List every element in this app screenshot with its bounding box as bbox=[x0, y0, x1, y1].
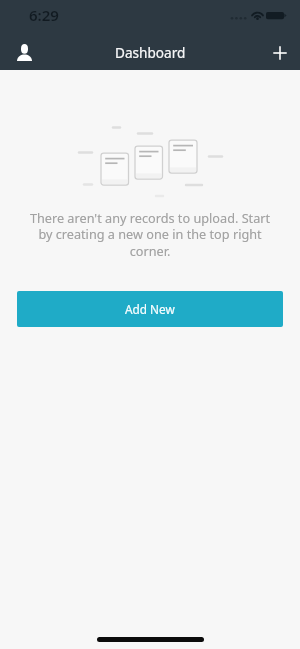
staticText: Dashboard bbox=[115, 43, 186, 62]
button[interactable]: Add New bbox=[17, 291, 283, 327]
staticText: 6:29 bbox=[29, 5, 59, 25]
button[interactable]: Profile bbox=[0, 30, 48, 70]
button[interactable]: Add bbox=[260, 30, 300, 70]
staticText: There aren't any records to upload. Star… bbox=[28, 209, 272, 260]
staticText: Add New bbox=[125, 301, 175, 317]
